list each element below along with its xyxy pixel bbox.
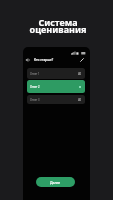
button[interactable]: Ответ 3 bbox=[27, 95, 85, 104]
button[interactable]: Назад bbox=[24, 56, 31, 63]
button[interactable]: Ответ 1 bbox=[27, 68, 85, 79]
staticText: Система оценивания bbox=[3, 16, 113, 36]
staticText: 40 bbox=[78, 98, 81, 102]
staticText: Далее bbox=[50, 180, 61, 185]
staticText: Ответ 1 bbox=[30, 72, 40, 76]
staticText: Ответ 3 bbox=[30, 98, 40, 102]
button[interactable]: Далее bbox=[36, 177, 75, 187]
button[interactable]: Ответ 2 bbox=[27, 80, 85, 93]
staticText: Кто старше? bbox=[34, 58, 54, 62]
staticText: 40 bbox=[78, 72, 81, 76]
button[interactable]: Редактировать bbox=[78, 56, 85, 63]
staticText: Ответ 2 bbox=[30, 85, 40, 89]
